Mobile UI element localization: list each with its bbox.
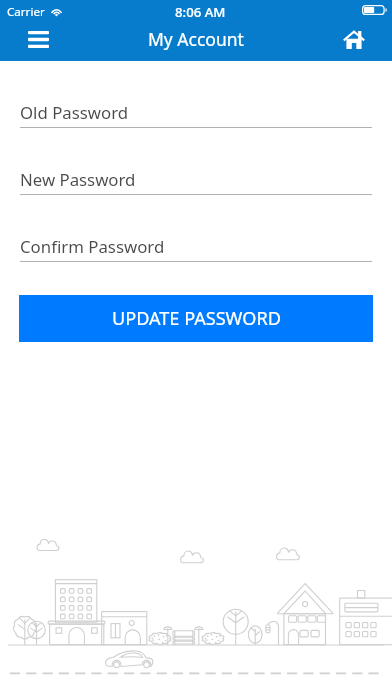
staticText: Confirm Password bbox=[20, 235, 165, 258]
staticText: 8:06 AM bbox=[175, 3, 226, 21]
button[interactable]: Home bbox=[334, 21, 374, 58]
staticText: New Password bbox=[20, 168, 136, 191]
staticText: Old Password bbox=[20, 101, 129, 124]
staticText: Carrier bbox=[7, 4, 45, 20]
staticText: My Account bbox=[148, 27, 244, 51]
button[interactable]: Menu bbox=[18, 21, 58, 58]
staticText: UPDATE PASSWORD bbox=[112, 306, 281, 331]
button[interactable]: UPDATE PASSWORD bbox=[19, 295, 373, 342]
